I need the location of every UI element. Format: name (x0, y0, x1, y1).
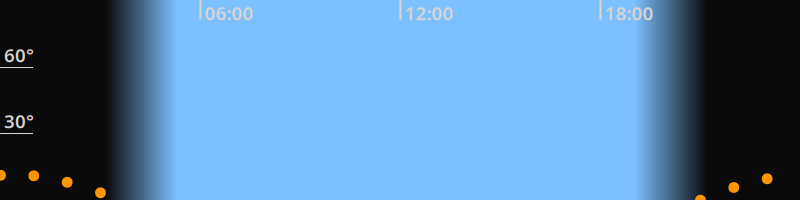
staticText: 12:00 (404, 1, 453, 25)
staticText: 06:00 (204, 1, 253, 25)
staticText: 30° (4, 109, 34, 133)
staticText: 18:00 (604, 1, 653, 25)
staticText: 60° (4, 43, 34, 67)
